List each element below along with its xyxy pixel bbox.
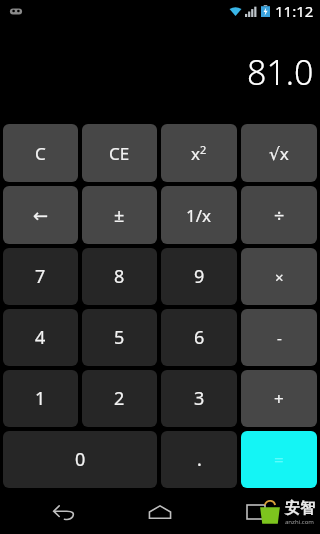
button[interactable]: x2 — [161, 124, 237, 182]
button[interactable]: 0 — [3, 431, 157, 488]
button[interactable]: ← — [3, 186, 78, 244]
button[interactable]: 2 — [82, 370, 157, 427]
staticText: 6 — [194, 325, 205, 350]
staticText: 81.0 — [247, 49, 314, 95]
button[interactable]: 7 — [3, 248, 78, 305]
button[interactable]: = — [241, 431, 317, 488]
staticText: . — [197, 447, 202, 472]
staticText: 7 — [35, 264, 46, 289]
button[interactable]: C — [3, 124, 78, 182]
button[interactable]: 9 — [161, 248, 237, 305]
staticText: + — [274, 387, 284, 410]
staticText: x2 — [191, 142, 207, 165]
staticText: anzhi.com — [285, 518, 314, 526]
button[interactable]: × — [241, 248, 317, 305]
staticText: ← — [33, 205, 49, 226]
staticText: 1 — [35, 386, 46, 411]
button[interactable]: 1/x — [161, 186, 237, 244]
button[interactable]: ÷ — [241, 186, 317, 244]
staticText: 3 — [194, 386, 205, 411]
staticText: - — [277, 328, 282, 348]
staticText: 11:12 — [275, 1, 314, 21]
button[interactable]: 6 — [161, 309, 237, 366]
staticText: ± — [114, 203, 125, 228]
button[interactable]: + — [241, 370, 317, 427]
button[interactable]: ± — [82, 186, 157, 244]
button[interactable]: 3 — [161, 370, 237, 427]
button[interactable]: 5 — [82, 309, 157, 366]
staticText: √x — [269, 142, 289, 165]
staticText: 2 — [114, 386, 125, 411]
staticText: 8 — [114, 264, 125, 289]
button[interactable]: Recent apps — [236, 492, 276, 532]
staticText: ÷ — [274, 203, 285, 228]
staticText: = — [274, 448, 284, 471]
staticText: 1/x — [186, 204, 212, 227]
button[interactable]: - — [241, 309, 317, 366]
button[interactable]: √x — [241, 124, 317, 182]
staticText: × — [275, 267, 284, 287]
staticText: 5 — [114, 325, 125, 350]
button[interactable]: CE — [82, 124, 157, 182]
button[interactable]: Home — [140, 492, 180, 532]
staticText: 4 — [35, 325, 46, 350]
button[interactable]: Back — [44, 492, 84, 532]
button[interactable]: 1 — [3, 370, 78, 427]
staticText: 0 — [75, 447, 86, 472]
button[interactable]: 4 — [3, 309, 78, 366]
button[interactable]: 8 — [82, 248, 157, 305]
staticText: 9 — [194, 264, 205, 289]
staticText: 安智 — [285, 499, 315, 518]
staticText: C — [35, 142, 46, 165]
button[interactable]: . — [161, 431, 237, 488]
staticText: CE — [109, 142, 130, 165]
